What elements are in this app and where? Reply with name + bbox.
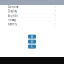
button[interactable]: C bbox=[28, 45, 36, 49]
button[interactable]: Sounds bbox=[6, 14, 58, 18]
staticText: Battery bbox=[7, 22, 16, 26]
button[interactable]: Privacy bbox=[6, 18, 58, 22]
button[interactable]: A bbox=[28, 35, 36, 39]
staticText: > bbox=[54, 18, 56, 22]
staticText: > bbox=[54, 5, 56, 9]
button[interactable]: Display bbox=[6, 9, 58, 13]
staticText: General bbox=[7, 5, 18, 9]
staticText: Privacy bbox=[7, 18, 15, 22]
button[interactable]: B bbox=[28, 40, 36, 44]
staticText: > bbox=[54, 9, 56, 13]
button[interactable]: Battery bbox=[6, 22, 58, 26]
button[interactable]: General bbox=[6, 5, 58, 9]
staticText: > bbox=[54, 22, 56, 26]
staticText: C bbox=[31, 45, 33, 48]
staticText: > bbox=[54, 14, 56, 17]
staticText: Sounds bbox=[7, 14, 17, 17]
staticText: Display bbox=[7, 9, 16, 13]
staticText: A bbox=[31, 35, 33, 38]
staticText: B bbox=[31, 40, 33, 43]
